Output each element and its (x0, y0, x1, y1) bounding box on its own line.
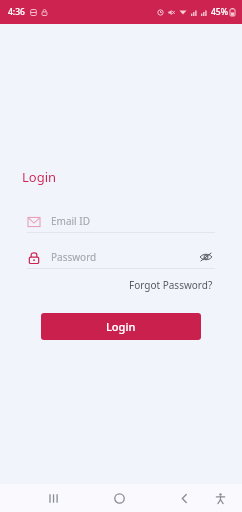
button[interactable]: Back (170, 484, 198, 512)
button[interactable]: Login (41, 313, 201, 340)
staticText: Password (51, 250, 197, 264)
staticText: Login (106, 319, 136, 334)
button[interactable]: Show password (197, 248, 215, 266)
staticText: 45% (211, 6, 228, 18)
staticText: Email ID (51, 214, 215, 228)
button[interactable]: Recent apps (40, 484, 68, 512)
staticText: 4:36 (8, 6, 25, 18)
button[interactable]: Accessibility (206, 484, 234, 512)
staticText: Login (22, 168, 57, 186)
button[interactable]: Forgot Password? (127, 275, 215, 295)
button[interactable]: Home (105, 484, 133, 512)
